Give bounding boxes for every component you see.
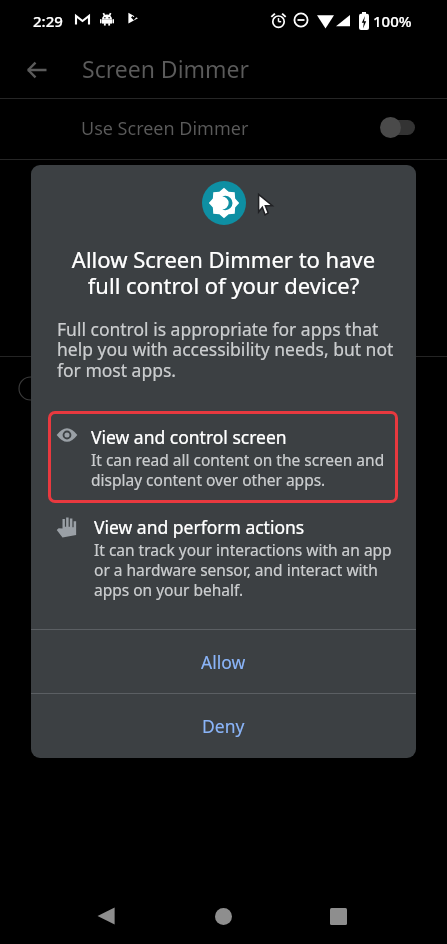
- staticText: 2:29: [33, 11, 63, 31]
- staticText: View and perform actions: [94, 515, 305, 539]
- staticText: Full control is appropriate for apps tha…: [57, 317, 396, 382]
- staticText: It can track your interactions with an a…: [94, 539, 406, 600]
- staticText: View and control screen: [91, 425, 287, 449]
- staticText: Allow Screen Dimmer to have full control…: [61, 244, 386, 301]
- staticText: Use Screen Dimmer: [81, 116, 249, 141]
- staticText: Allow: [201, 650, 246, 674]
- button[interactable]: Home: [195, 888, 251, 944]
- button[interactable]: View and control screen: [48, 411, 398, 503]
- staticText: 100%: [373, 11, 412, 31]
- button[interactable]: Use Screen Dimmer: [0, 99, 447, 160]
- button[interactable]: Allow: [31, 630, 416, 693]
- button[interactable]: View and perform actions: [56, 515, 406, 600]
- button[interactable]: Back: [16, 49, 58, 91]
- button[interactable]: Recent apps: [310, 888, 366, 944]
- button[interactable]: Back: [78, 888, 134, 944]
- staticText: It can read all content on the screen an…: [91, 449, 388, 490]
- staticText: Deny: [202, 714, 245, 738]
- button[interactable]: Deny: [31, 694, 416, 758]
- staticText: Screen Dimmer: [82, 53, 250, 84]
